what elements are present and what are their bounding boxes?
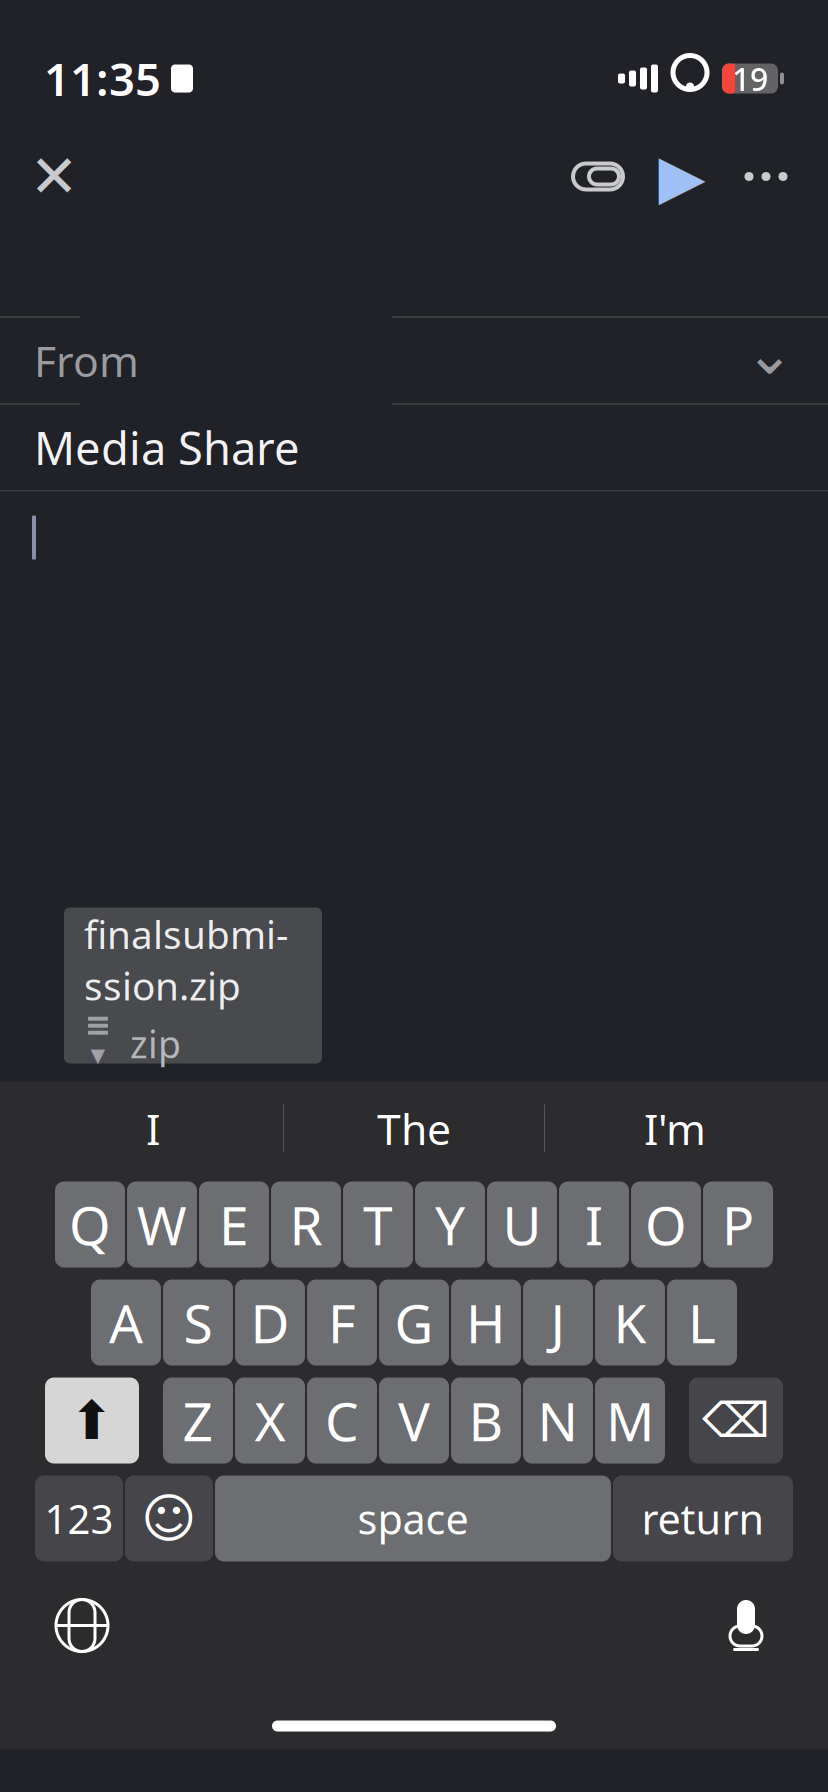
button[interactable]: finalsubmission.zip — [64, 907, 322, 1063]
button[interactable]: J — [523, 1279, 593, 1365]
staticText: W — [137, 1189, 187, 1260]
staticText: I'm — [644, 1100, 706, 1157]
staticText: ▶ — [658, 142, 705, 211]
staticText: 11:35 — [44, 48, 161, 109]
staticText: B — [468, 1385, 503, 1456]
button[interactable]: N — [523, 1377, 593, 1463]
button[interactable]: T — [343, 1181, 413, 1267]
staticText: M — [606, 1385, 654, 1456]
staticText: 19 — [732, 57, 768, 100]
button[interactable]: P — [703, 1181, 773, 1267]
staticText: U — [502, 1189, 541, 1260]
staticText: O — [645, 1189, 687, 1260]
button[interactable]: I — [559, 1181, 629, 1267]
staticText: ☺ — [141, 1488, 197, 1549]
staticText: ✕ — [29, 143, 78, 210]
button[interactable]: H — [451, 1279, 521, 1365]
button[interactable]: Send — [640, 134, 724, 218]
staticText: V — [398, 1385, 430, 1456]
staticText: D — [250, 1287, 289, 1358]
button[interactable]: Emoji — [125, 1475, 213, 1561]
button[interactable]: V — [379, 1377, 449, 1463]
staticText: Z — [182, 1385, 213, 1456]
staticText: N — [537, 1385, 578, 1456]
button[interactable]: return — [613, 1475, 793, 1561]
button[interactable]: Z — [163, 1377, 233, 1463]
staticText: Y — [435, 1189, 465, 1260]
staticText: H — [466, 1287, 506, 1358]
staticText: Media Share — [34, 417, 300, 478]
button[interactable]: space — [215, 1475, 611, 1561]
staticText: R — [289, 1189, 322, 1260]
button[interactable]: W — [127, 1181, 197, 1267]
staticText: finalsubmission.zip — [84, 908, 288, 1011]
button[interactable]: I'm — [545, 1089, 805, 1167]
button[interactable]: K — [595, 1279, 665, 1365]
button[interactable]: M — [595, 1377, 665, 1463]
staticText: zip — [130, 1019, 181, 1069]
button[interactable]: D — [235, 1279, 305, 1365]
button[interactable]: Dictate — [698, 1577, 794, 1673]
staticText: The — [377, 1100, 451, 1157]
staticText: K — [613, 1287, 646, 1358]
staticText: J — [550, 1287, 565, 1358]
button[interactable]: From — [0, 317, 828, 403]
staticText: G — [394, 1287, 433, 1358]
button[interactable]: F — [307, 1279, 377, 1365]
staticText: ▾ — [90, 1038, 105, 1071]
button[interactable]: S — [163, 1279, 233, 1365]
button[interactable]: Switch keyboard — [34, 1577, 130, 1673]
staticText: 123 — [44, 1492, 113, 1545]
staticText: ⌫ — [702, 1393, 770, 1448]
staticText: From — [34, 332, 139, 389]
staticText: E — [219, 1189, 249, 1260]
button[interactable]: Media Share — [0, 404, 828, 490]
staticText: F — [328, 1287, 356, 1358]
button[interactable]: 123 — [35, 1475, 123, 1561]
button[interactable]: Shift — [45, 1377, 139, 1463]
button[interactable]: Attach file — [556, 134, 640, 218]
staticText: space — [357, 1491, 468, 1546]
button[interactable]: B — [451, 1377, 521, 1463]
button[interactable]: Delete — [689, 1377, 783, 1463]
button[interactable]: U — [487, 1181, 557, 1267]
button[interactable]: G — [379, 1279, 449, 1365]
staticText: T — [363, 1189, 393, 1260]
button[interactable]: E — [199, 1181, 269, 1267]
staticText: S — [183, 1287, 212, 1358]
staticText: I — [585, 1189, 603, 1260]
button[interactable]: Close — [12, 134, 96, 218]
staticText: P — [722, 1189, 754, 1260]
staticText: L — [688, 1287, 716, 1358]
button[interactable]: Q — [55, 1181, 125, 1267]
staticText: return — [641, 1491, 764, 1546]
staticText: X — [254, 1385, 285, 1456]
staticText: ⬆ — [69, 1390, 114, 1451]
button[interactable]: A — [91, 1279, 161, 1365]
button[interactable]: Y — [415, 1181, 485, 1267]
staticText: C — [325, 1385, 359, 1456]
staticText: ⌄ — [745, 320, 794, 387]
staticText: A — [109, 1287, 143, 1358]
button[interactable]: O — [631, 1181, 701, 1267]
button[interactable]: L — [667, 1279, 737, 1365]
button[interactable]: The — [284, 1089, 544, 1167]
button[interactable]: More options — [724, 134, 808, 218]
staticText: I — [146, 1100, 160, 1157]
button[interactable]: C — [307, 1377, 377, 1463]
button[interactable]: R — [271, 1181, 341, 1267]
staticText: Q — [69, 1189, 111, 1260]
button[interactable]: I — [23, 1089, 283, 1167]
button[interactable]: X — [235, 1377, 305, 1463]
